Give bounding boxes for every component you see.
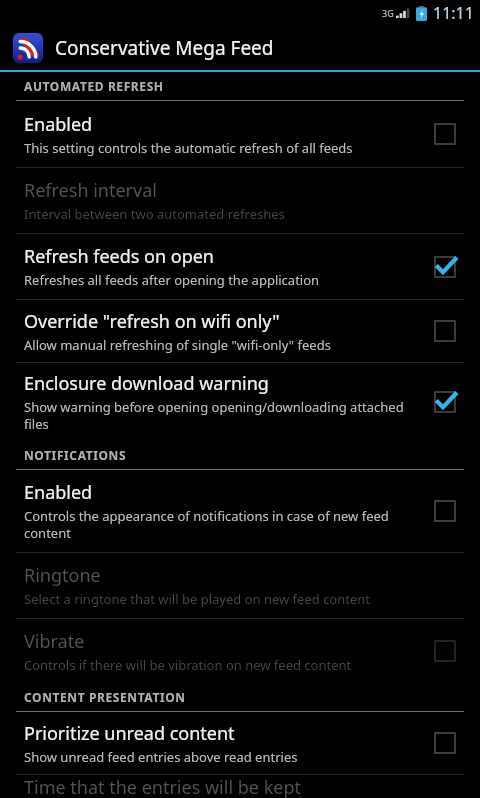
- button[interactable]: Ringtone: [0, 553, 480, 618]
- button[interactable]: Override "refresh on wifi only": [0, 300, 480, 362]
- staticText: Time that the entries will be kept: [24, 775, 301, 798]
- button[interactable]: Prioritize unread content: [0, 712, 480, 774]
- staticText: Refreshes all feeds after opening the ap…: [24, 271, 320, 289]
- staticText: Conservative Mega Feed: [55, 35, 274, 61]
- staticText: Enabled: [24, 480, 93, 505]
- staticText: Enclosure download warning: [24, 371, 269, 396]
- button[interactable]: Unchecked: [428, 117, 462, 151]
- staticText: Interval between two automated refreshes: [24, 205, 285, 223]
- staticText: Controls if there will be vibration on n…: [24, 656, 352, 674]
- staticText: Controls the appearance of notifications…: [24, 507, 416, 542]
- button[interactable]: Refresh interval: [0, 168, 480, 233]
- staticText: CONTENT PRESENTATION: [24, 689, 186, 705]
- button[interactable]: Time that the entries will be kept: [0, 775, 480, 798]
- button[interactable]: Unchecked: [428, 314, 462, 348]
- staticText: Ringtone: [24, 563, 101, 588]
- staticText: AUTOMATED REFRESH: [24, 78, 164, 94]
- staticText: Allow manual refreshing of single "wifi-…: [24, 336, 331, 354]
- staticText: 3G: [382, 7, 394, 19]
- staticText: Show warning before opening opening/down…: [24, 398, 416, 433]
- staticText: This setting controls the automatic refr…: [24, 139, 353, 157]
- button[interactable]: Unchecked: [428, 634, 462, 668]
- button[interactable]: Vibrate: [0, 619, 480, 683]
- staticText: Vibrate: [24, 629, 85, 654]
- button[interactable]: Enabled: [0, 101, 480, 167]
- button[interactable]: Enabled: [0, 470, 480, 552]
- button[interactable]: Checked: [428, 250, 462, 284]
- button[interactable]: Enclosure download warning: [0, 363, 480, 441]
- staticText: Show unread feed entries above read entr…: [24, 748, 298, 766]
- button[interactable]: Refresh feeds on open: [0, 234, 480, 299]
- staticText: Refresh feeds on open: [24, 244, 214, 269]
- staticText: Select a ringtone that will be played on…: [24, 590, 371, 608]
- staticText: Prioritize unread content: [24, 721, 235, 746]
- button[interactable]: Unchecked: [428, 726, 462, 760]
- button[interactable]: Unchecked: [428, 494, 462, 528]
- button[interactable]: Checked: [428, 385, 462, 419]
- staticText: Enabled: [24, 112, 93, 137]
- staticText: Refresh interval: [24, 178, 157, 203]
- staticText: Override "refresh on wifi only": [24, 309, 280, 334]
- staticText: NOTIFICATIONS: [24, 447, 127, 463]
- staticText: 11:11: [433, 2, 474, 24]
